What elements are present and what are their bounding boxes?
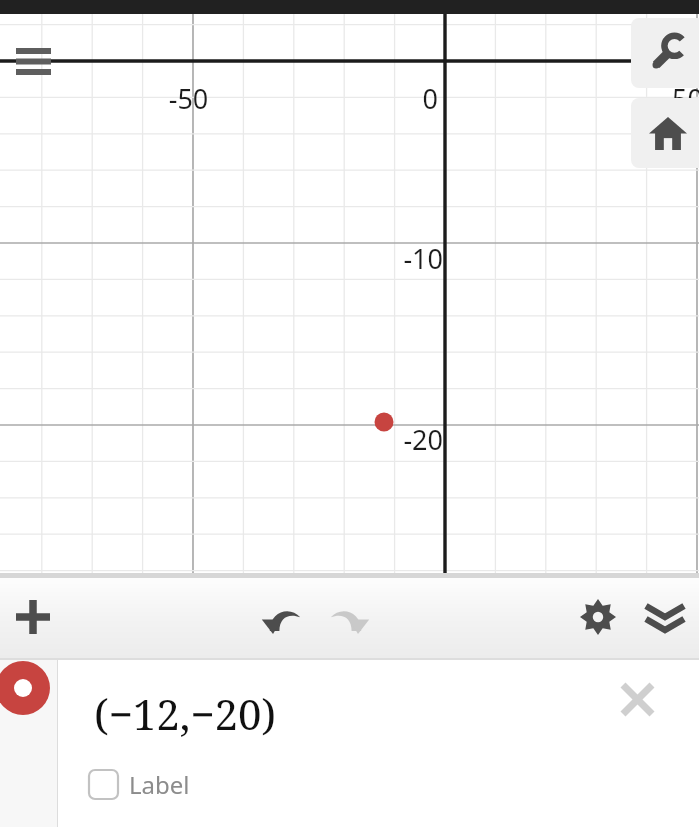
button[interactable]: Home <box>631 98 699 168</box>
button[interactable]: Label <box>89 768 190 801</box>
button[interactable]: Undo <box>252 596 310 642</box>
staticText: (−12,−20) <box>94 685 277 742</box>
staticText: -10 <box>345 240 443 277</box>
button[interactable]: Graph settings <box>631 18 699 88</box>
button[interactable]: Menu <box>6 34 60 88</box>
button[interactable]: Settings <box>569 594 627 640</box>
staticText: -50 <box>136 80 241 117</box>
button[interactable]: Point style <box>0 660 57 827</box>
staticText: 50 <box>672 80 699 117</box>
staticText: Label <box>129 768 190 801</box>
staticText: -20 <box>345 421 443 458</box>
button[interactable]: Redo <box>321 596 379 642</box>
staticText: 0 <box>378 80 438 117</box>
button[interactable]: Collapse <box>636 596 694 642</box>
button[interactable]: Delete expression <box>608 670 666 728</box>
button[interactable]: Add expression <box>4 594 62 640</box>
